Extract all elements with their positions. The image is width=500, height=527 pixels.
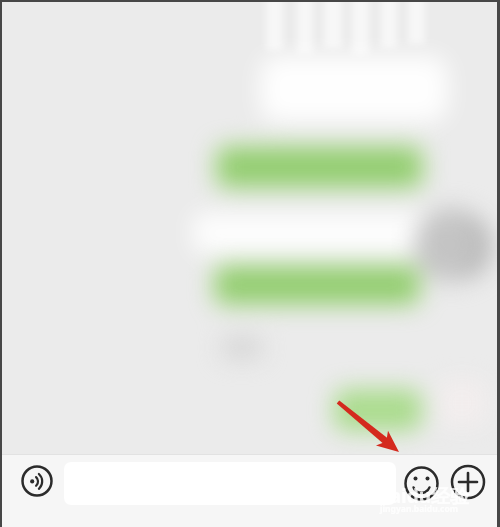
staticText: Baidu经验 xyxy=(377,483,470,509)
button[interactable] xyxy=(20,464,54,498)
button[interactable] xyxy=(404,466,439,501)
button[interactable] xyxy=(450,464,486,500)
staticText: jingyan.baidu.com xyxy=(380,503,459,515)
